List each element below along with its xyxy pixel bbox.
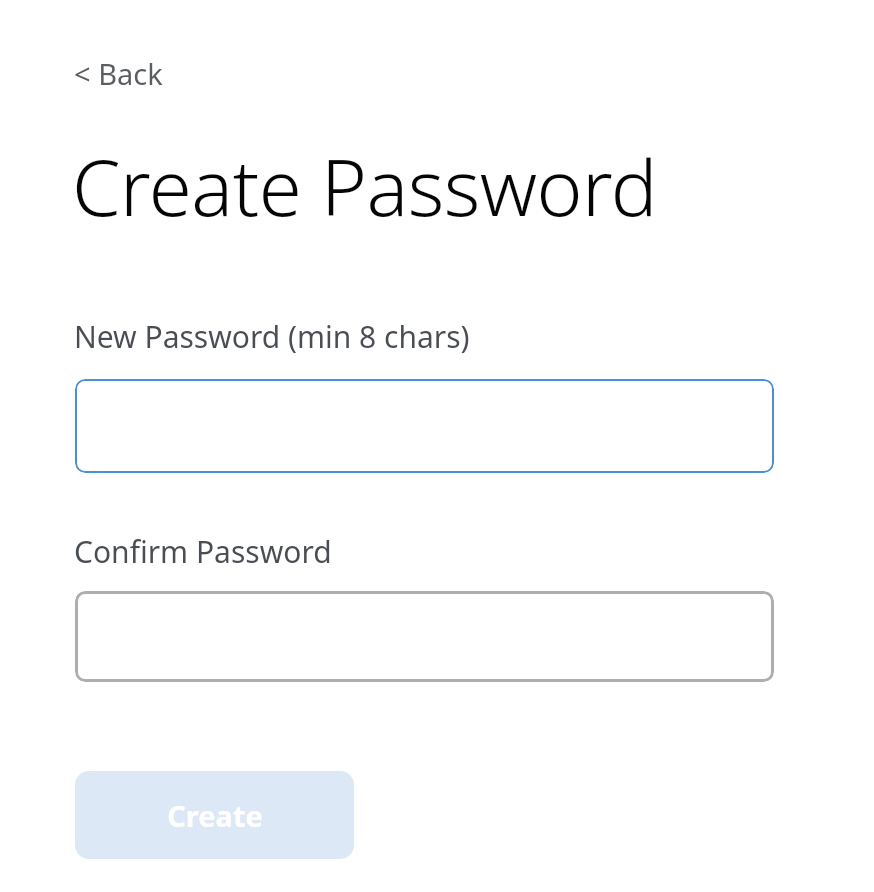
staticText: < Back [74, 54, 163, 93]
button[interactable]: Create [75, 771, 354, 859]
button[interactable]: New password input [75, 379, 774, 473]
staticText: Create Password [72, 133, 657, 239]
staticText: Create [167, 796, 263, 835]
button[interactable]: Confirm password input [75, 591, 774, 682]
button[interactable]: < Back [72, 52, 165, 95]
staticText: Confirm Password [74, 531, 332, 572]
staticText: New Password (min 8 chars) [74, 316, 470, 357]
